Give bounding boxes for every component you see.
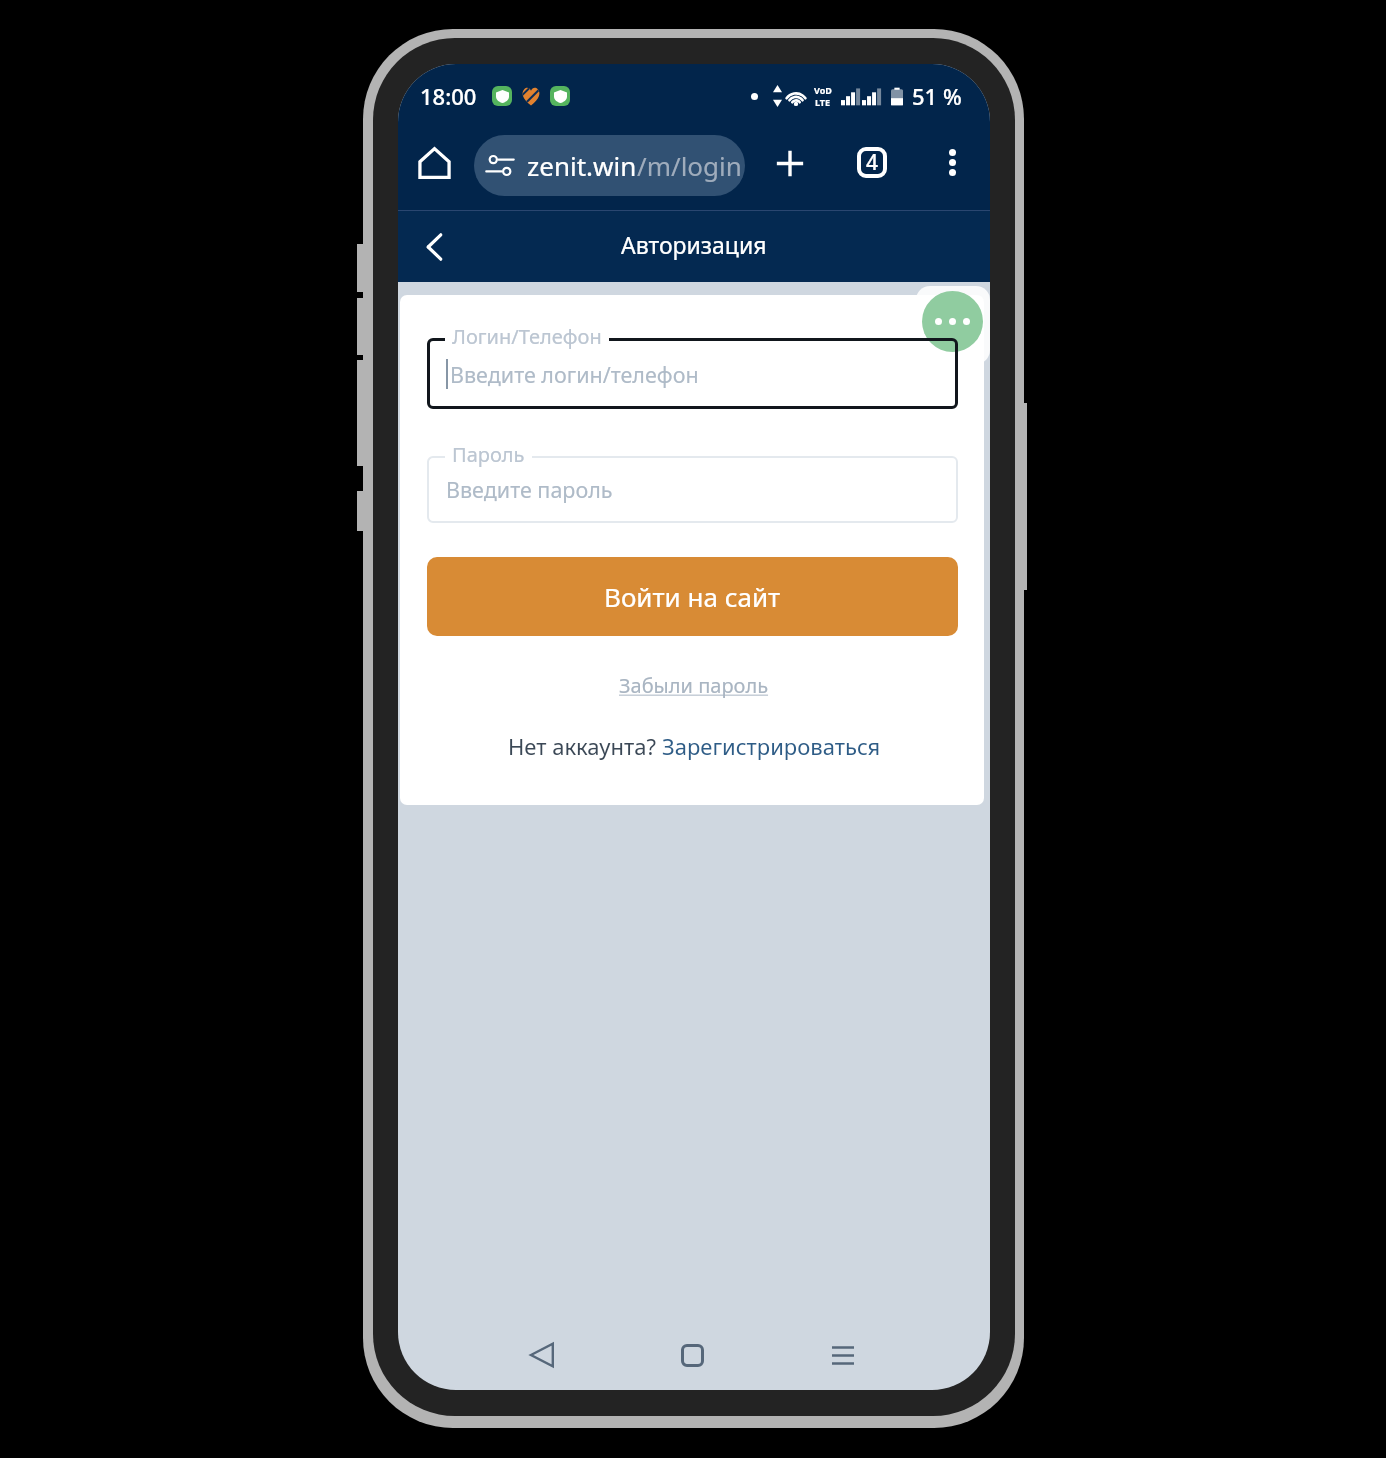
staticText: Введите логин/телефон	[450, 360, 699, 389]
staticText: zenit.win	[527, 148, 637, 183]
staticText: Войти на сайт	[604, 579, 781, 614]
staticText: 51 %	[912, 81, 962, 111]
button[interactable]: More actions	[922, 291, 983, 352]
staticText: 18:00	[420, 81, 477, 111]
button[interactable]: Войти на сайт	[427, 557, 958, 636]
button[interactable]: New tab	[765, 138, 815, 188]
staticText: Авторизация	[621, 229, 767, 260]
button[interactable]: More options	[930, 140, 975, 185]
button[interactable]: Home	[660, 1323, 724, 1387]
staticText: VoD	[814, 84, 832, 96]
button[interactable]: Введите логин/телефон	[427, 338, 958, 409]
staticText: Забыли пароль	[619, 672, 769, 699]
staticText: LTE	[815, 96, 831, 108]
button[interactable]: Back	[510, 1323, 574, 1387]
button[interactable]: Забыли пароль	[398, 668, 990, 702]
button[interactable]: Введите пароль	[427, 456, 958, 523]
staticText: /m/login	[637, 148, 742, 183]
staticText: Пароль	[452, 441, 525, 468]
staticText: Логин/Телефон	[452, 323, 602, 350]
button[interactable]: zenit.win	[474, 135, 745, 196]
button[interactable]: Home	[408, 137, 460, 189]
staticText: Зарегистрироваться	[662, 731, 881, 761]
staticText: Нет аккаунта?	[508, 731, 662, 761]
button[interactable]: Back	[406, 219, 462, 275]
button[interactable]: Tabs, 4 open	[847, 137, 897, 187]
staticText: 4	[866, 148, 879, 177]
button[interactable]: Recent apps	[811, 1323, 875, 1387]
button[interactable]: Зарегистрироваться	[662, 728, 881, 764]
staticText: Введите пароль	[446, 475, 613, 504]
